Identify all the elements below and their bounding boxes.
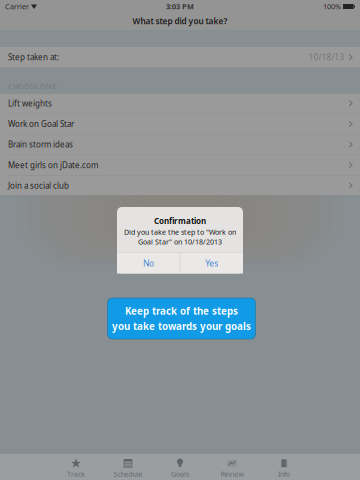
staticText: Yes: [205, 257, 218, 269]
button[interactable]: Keep track of the steps: [107, 298, 255, 339]
staticText: Work on Goal Star: [8, 118, 74, 129]
button[interactable]: Meet girls on jDate.com: [0, 155, 360, 175]
button[interactable]: Brain storm ideas: [0, 134, 360, 154]
button[interactable]: Work on Goal Star: [0, 114, 360, 134]
button[interactable]: Goals: [154, 454, 206, 480]
button[interactable]: Step taken at:: [0, 47, 360, 67]
staticText: Carrier: [5, 1, 29, 11]
button[interactable]: Lift weights: [0, 93, 360, 113]
staticText: 100%: [323, 1, 341, 11]
button[interactable]: Review: [206, 454, 258, 480]
staticText: Schedule: [113, 469, 142, 479]
staticText: Brain storm ideas: [8, 139, 73, 150]
staticText: 10/18/13: [308, 52, 344, 63]
staticText: Track: [67, 469, 85, 479]
staticText: Meet girls on jDate.com: [8, 160, 98, 171]
staticText: Step taken at:: [8, 52, 59, 63]
staticText: Info: [278, 469, 290, 479]
button[interactable]: Join a social club: [0, 176, 360, 196]
staticText: No: [143, 257, 154, 269]
button[interactable]: Info: [258, 454, 310, 480]
staticText: Goals: [171, 469, 189, 479]
staticText: Review: [220, 469, 243, 479]
staticText: Join a social club: [8, 180, 69, 191]
button[interactable]: No: [117, 253, 180, 273]
button[interactable]: Yes: [180, 253, 243, 273]
button[interactable]: Track: [50, 454, 102, 480]
staticText: Goal Star" on 10/18/2013: [138, 237, 222, 247]
staticText: What step did you take?: [132, 15, 227, 27]
staticText: Keep track of the steps: [125, 304, 238, 317]
staticText: 3:03 PM: [166, 1, 194, 11]
staticText: Did you take the step to "Work on: [124, 227, 236, 237]
staticText: you take towards your goals: [112, 319, 251, 333]
staticText: Lift weights: [8, 98, 52, 109]
staticText: Confirmation: [154, 215, 206, 226]
button[interactable]: Schedule: [102, 454, 154, 480]
staticText: CHOOSE ONE:: [8, 81, 58, 91]
